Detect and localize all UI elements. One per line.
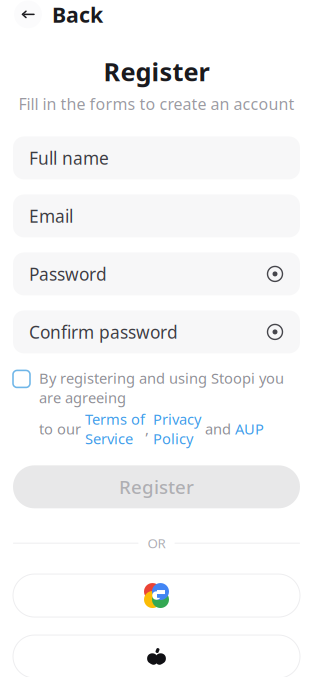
staticText: Password [29,262,107,285]
staticText: AUP [235,419,264,439]
staticText: Full name [29,146,109,169]
staticText: Fill in the forms to create an account [18,93,294,114]
staticText: By registering and using Stoopi you are … [39,368,284,407]
button[interactable]: Accept terms [13,368,30,387]
button[interactable]: Privacy Policy [153,409,201,448]
button[interactable]: Back [14,0,103,30]
button[interactable]: Confirm password [13,310,300,353]
button[interactable]: Continue with Apple [13,635,300,677]
button[interactable]: Continue with Google [13,574,300,617]
button[interactable]: Full name [13,136,300,179]
button[interactable]: Email [13,194,300,237]
staticText: Register [119,474,194,499]
staticText: Register [103,54,209,88]
staticText: Privacy Policy [153,409,201,448]
button[interactable]: Password [13,252,300,295]
staticText: Email [29,204,73,227]
button[interactable]: Terms of Service [85,409,145,448]
staticText: Back [52,0,103,28]
staticText: and [201,419,235,439]
button[interactable]: AUP [235,419,264,439]
staticText: to our [39,419,85,439]
staticText: , [145,419,153,439]
staticText: Confirm password [29,320,178,343]
button[interactable]: Register [13,465,300,508]
staticText: Terms of Service [85,409,145,448]
staticText: OR [147,534,165,552]
